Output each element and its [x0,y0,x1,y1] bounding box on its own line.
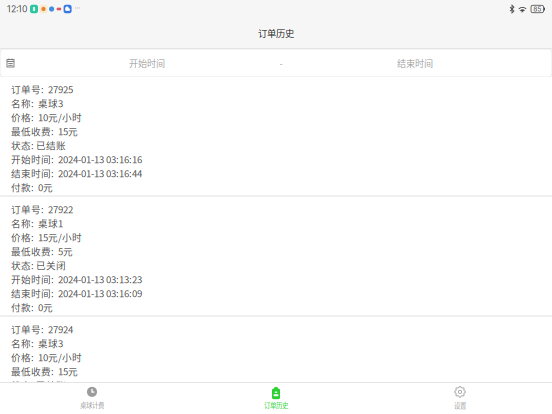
staticText: ··· [75,3,81,12]
button[interactable]: 订单号: 27922 [0,197,552,315]
button[interactable]: 桌球计费 [0,382,184,414]
staticText: 结束时间: 2024-01-13 03:16:44 [11,166,142,180]
staticText: 名称: 桌球1 [11,216,63,230]
button[interactable]: 订单历史 [184,382,368,414]
staticText: 开始时间: 2024-01-13 03:12:02 [11,392,142,406]
staticText: 设置 [454,401,466,410]
staticText: 最低收费: 15元 [11,364,78,378]
staticText: - [279,56,282,69]
button[interactable]: 选择日期 [0,49,21,77]
staticText: 价格: 10元/小时 [11,350,82,364]
staticText: 名称: 桌球3 [11,96,63,110]
staticText: 状态: 已结账 [11,138,66,152]
staticText: 12:10 [7,4,27,14]
button[interactable]: 结束时间 [352,49,478,77]
staticText: 开始时间 [129,56,165,69]
button[interactable]: 开始时间 [84,49,210,77]
staticText: 桌球计费 [80,400,104,410]
staticText: 订单历史 [258,26,294,40]
button[interactable]: 订单号: 27925 [0,77,552,195]
staticText: 价格: 10元/小时 [11,110,82,124]
staticText: 最低收费: 15元 [11,124,78,138]
staticText: 状态: 已结账 [11,378,66,392]
staticText: 最低收费: 5元 [11,244,73,258]
staticText: 付款: 0元 [11,300,53,314]
button[interactable]: 设置 [368,382,552,414]
staticText: 订单号: 27924 [11,322,73,336]
staticText: 名称: 桌球3 [11,336,63,350]
staticText: 状态: 已关闭 [11,258,66,272]
staticText: 85 [533,5,541,13]
staticText: 订单历史 [264,401,288,410]
button[interactable]: 订单号: 27924 [0,317,552,414]
staticText: 订单号: 27925 [11,82,73,96]
staticText: 开始时间: 2024-01-13 03:13:23 [11,272,142,286]
staticText: 结束时间 [397,56,433,69]
staticText: 开始时间: 2024-01-13 03:16:16 [11,152,142,166]
staticText: 订单号: 27922 [11,202,73,216]
staticText: 结束时间: 2024-01-13 03:16:09 [11,286,142,300]
staticText: 价格: 15元/小时 [11,230,82,244]
staticText: 结束时间: 2024-01-13 03:13:10 [11,406,142,414]
staticText: 付款: 0元 [11,180,53,194]
